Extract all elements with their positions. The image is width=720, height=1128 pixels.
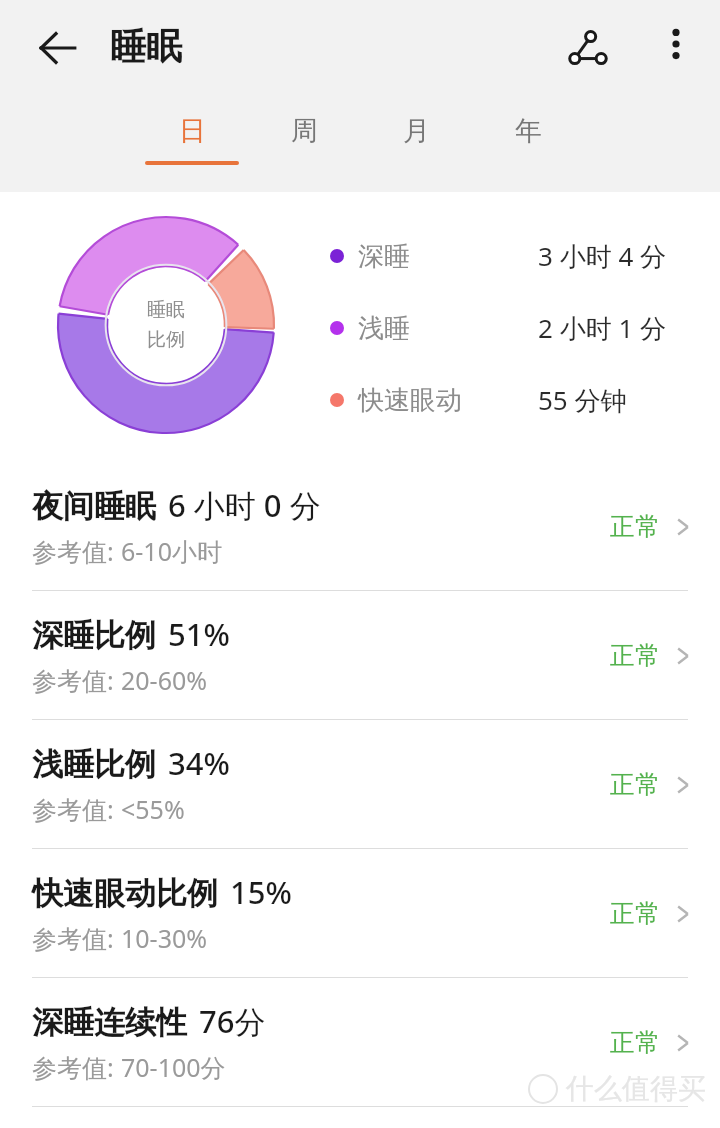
staticText: 3 小时 4 分: [538, 238, 667, 274]
button[interactable]: 年: [472, 108, 584, 180]
staticText: 正常: [610, 898, 660, 929]
staticText: 月: [403, 114, 430, 148]
button[interactable]: More options: [644, 12, 708, 76]
staticText: 年: [515, 114, 542, 148]
staticText: 6-10小时: [121, 534, 222, 568]
staticText: 55 分钟: [538, 382, 627, 418]
staticText: 76分: [199, 1000, 266, 1042]
staticText: 正常: [610, 511, 660, 542]
staticText: 正常: [610, 1027, 660, 1058]
staticText: 2 小时 1 分: [538, 310, 667, 346]
button[interactable]: 深睡连续性: [0, 978, 720, 1106]
staticText: 34%: [168, 742, 230, 784]
button[interactable]: Share: [552, 12, 624, 84]
button[interactable]: 快速眼动比例: [0, 849, 720, 977]
staticText: 夜间睡眠: [32, 487, 156, 526]
staticText: 51%: [168, 613, 230, 655]
staticText: 快速眼动: [358, 384, 462, 417]
staticText: 深睡连续性: [32, 1003, 187, 1042]
staticText: 70-100分: [121, 1050, 226, 1084]
button[interactable]: 深睡比例: [0, 591, 720, 719]
staticText: 10-30%: [121, 921, 208, 955]
staticText: 参考值:: [32, 921, 121, 955]
staticText: 15%: [230, 871, 292, 913]
staticText: 6 小时 0 分: [168, 484, 321, 526]
button[interactable]: 夜间睡眠: [0, 462, 720, 590]
staticText: 深睡比例: [32, 616, 156, 655]
staticText: 快速眼动比例: [32, 874, 218, 913]
staticText: 参考值:: [32, 1050, 121, 1084]
staticText: 浅睡: [358, 312, 410, 345]
staticText: 深睡: [358, 240, 410, 273]
staticText: 日: [179, 114, 206, 148]
staticText: 20-60%: [121, 663, 208, 697]
staticText: 正常: [610, 769, 660, 800]
staticText: 参考值:: [32, 663, 121, 697]
button[interactable]: Back: [22, 12, 94, 84]
button[interactable]: 日: [136, 108, 248, 180]
staticText: 正常: [610, 640, 660, 671]
staticText: 睡眠: [147, 298, 185, 322]
staticText: 参考值:: [32, 534, 121, 568]
staticText: 浅睡比例: [32, 745, 156, 784]
staticText: 睡眠: [110, 24, 182, 69]
button[interactable]: 月: [360, 108, 472, 180]
staticText: 参考值:: [32, 792, 121, 826]
button[interactable]: 周: [248, 108, 360, 180]
staticText: 什么值得买: [566, 1071, 706, 1106]
staticText: 周: [291, 114, 318, 148]
staticText: <55%: [121, 792, 185, 826]
staticText: 比例: [147, 328, 185, 352]
button[interactable]: 浅睡比例: [0, 720, 720, 848]
